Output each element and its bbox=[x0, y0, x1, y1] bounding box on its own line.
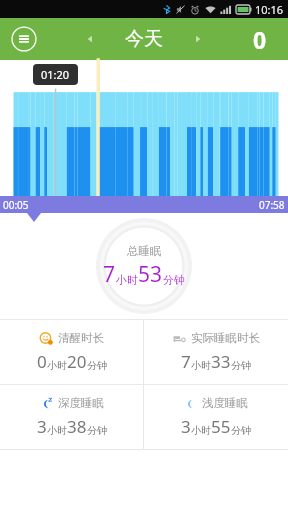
staticText: 3 bbox=[181, 415, 191, 438]
staticText: 清醒时长 bbox=[58, 331, 104, 345]
staticText: 小时 bbox=[116, 273, 138, 287]
staticText: 38 bbox=[67, 415, 87, 438]
staticText: 实际睡眠时长 bbox=[191, 331, 260, 345]
staticText: 01:20 bbox=[41, 67, 70, 82]
staticText: 07:58 bbox=[259, 198, 285, 212]
button[interactable]: Menu bbox=[8, 23, 40, 55]
button[interactable]: 浅度睡眠 bbox=[144, 385, 288, 449]
staticText: 53 bbox=[138, 260, 163, 289]
button[interactable]: 实际睡眠时长 bbox=[144, 320, 288, 384]
staticText: 55 bbox=[211, 415, 231, 438]
staticText: 分钟 bbox=[231, 424, 251, 437]
staticText: 深度睡眠 bbox=[58, 396, 104, 410]
button[interactable]: Previous day bbox=[77, 26, 103, 52]
staticText: 10:16 bbox=[255, 2, 284, 17]
button[interactable]: Profile bbox=[244, 23, 276, 55]
button[interactable]: 清醒时长 bbox=[0, 320, 143, 384]
staticText: 20 bbox=[67, 350, 87, 373]
staticText: 分钟 bbox=[87, 359, 107, 372]
staticText: 小时 bbox=[47, 359, 67, 372]
staticText: 小时 bbox=[191, 359, 211, 372]
staticText: 00:05 bbox=[3, 198, 29, 212]
staticText: 0 bbox=[37, 350, 47, 373]
staticText: 今天 bbox=[125, 27, 163, 51]
staticText: 小时 bbox=[191, 424, 211, 437]
staticText: 3 bbox=[37, 415, 47, 438]
button[interactable]: 深度睡眠 bbox=[0, 385, 143, 449]
staticText: 小时 bbox=[47, 424, 67, 437]
staticText: 浅度睡眠 bbox=[202, 396, 248, 410]
staticText: 33 bbox=[211, 350, 231, 373]
button[interactable]: Next day bbox=[185, 26, 211, 52]
staticText: 7 bbox=[181, 350, 191, 373]
staticText: 分钟 bbox=[163, 273, 185, 287]
staticText: 0 bbox=[253, 24, 267, 55]
staticText: 分钟 bbox=[231, 359, 251, 372]
staticText: 分钟 bbox=[87, 424, 107, 437]
staticText: 总睡眠 bbox=[127, 244, 162, 258]
button[interactable]: 总睡眠 bbox=[103, 244, 185, 289]
staticText: 7 bbox=[103, 260, 116, 289]
